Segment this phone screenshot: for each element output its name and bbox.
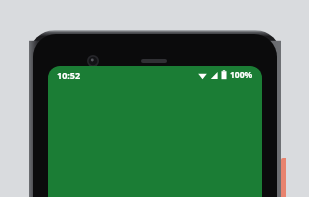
other: Battery bbox=[221, 70, 227, 80]
staticText: 10:52 bbox=[57, 69, 81, 81]
other: Wi-Fi bbox=[198, 71, 207, 80]
staticText: 100% bbox=[230, 69, 253, 81]
other: Mobile signal bbox=[210, 71, 218, 80]
button[interactable]: Power button bbox=[281, 158, 286, 197]
